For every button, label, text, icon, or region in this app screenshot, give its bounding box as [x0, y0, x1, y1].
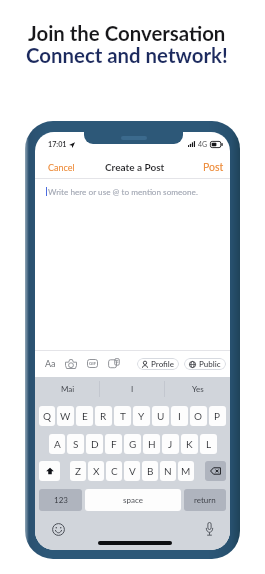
button[interactable]: L	[200, 434, 217, 454]
button[interactable]: Mai	[35, 379, 100, 399]
button[interactable]: C	[106, 461, 122, 481]
button[interactable]: P	[209, 406, 226, 426]
staticText: space	[123, 495, 143, 505]
button[interactable]: O	[190, 406, 207, 426]
staticText: P	[214, 410, 221, 422]
button[interactable]: J	[162, 434, 179, 454]
staticText: Connect and network!	[26, 43, 228, 67]
staticText: I	[131, 384, 134, 394]
button[interactable]: K	[181, 434, 198, 454]
staticText: Y	[138, 410, 145, 422]
button[interactable]: F	[105, 434, 122, 454]
button[interactable]: Attach file	[108, 358, 120, 369]
button[interactable]: Backspace	[205, 461, 226, 481]
button[interactable]: T	[114, 406, 131, 426]
button[interactable]: Z	[70, 461, 86, 481]
staticText: X	[93, 465, 100, 477]
button[interactable]: W	[57, 406, 74, 426]
staticText: 17:01	[48, 140, 67, 149]
staticText: I	[178, 410, 181, 422]
button[interactable]: I	[100, 379, 165, 399]
button[interactable]: Profile	[137, 358, 179, 370]
button[interactable]: G	[124, 434, 141, 454]
staticText: E	[82, 410, 88, 422]
button[interactable]: return	[184, 489, 226, 511]
button[interactable]: Voice input	[205, 522, 214, 536]
button[interactable]: H	[143, 434, 160, 454]
staticText: T	[120, 410, 126, 422]
button[interactable]: Shift	[39, 461, 60, 481]
staticText: S	[73, 438, 79, 450]
staticText: L	[206, 438, 212, 450]
staticText: O	[194, 410, 203, 422]
staticText: V	[129, 465, 136, 477]
staticText: Cancel	[48, 162, 75, 173]
staticText: M	[181, 465, 191, 477]
staticText: D	[91, 438, 99, 450]
button[interactable]: M	[178, 461, 194, 481]
staticText: Join the Conversation	[28, 21, 226, 45]
button[interactable]: Emoji	[52, 523, 65, 536]
staticText: W	[60, 410, 71, 422]
staticText: Yes	[192, 384, 204, 394]
staticText: Public	[199, 359, 221, 369]
staticText: H	[148, 438, 156, 450]
staticText: Z	[75, 465, 82, 477]
button[interactable]: N	[160, 461, 176, 481]
button[interactable]: Yes	[165, 379, 230, 399]
button[interactable]: Add photo	[65, 359, 77, 369]
staticText: Aa	[45, 358, 56, 369]
button[interactable]: V	[124, 461, 140, 481]
staticText: Mai	[61, 384, 75, 394]
button[interactable]: Y	[133, 406, 150, 426]
button[interactable]: I	[171, 406, 188, 426]
staticText: R	[100, 410, 107, 422]
staticText: Profile	[151, 359, 174, 369]
staticText: Write here or use @ to mention someone.	[48, 187, 198, 197]
button[interactable]: Post	[203, 161, 224, 174]
staticText: 123	[54, 495, 68, 505]
button[interactable]: Q	[39, 406, 55, 426]
button[interactable]: B	[142, 461, 158, 481]
staticText: B	[147, 465, 154, 477]
button[interactable]: Cancel	[48, 162, 75, 173]
staticText: G	[129, 438, 137, 450]
button[interactable]: A	[49, 434, 65, 454]
staticText: Q	[43, 410, 52, 422]
button[interactable]: Add GIF	[87, 359, 98, 368]
staticText: A	[54, 438, 61, 450]
button[interactable]: 123	[39, 489, 82, 511]
staticText: U	[157, 410, 165, 422]
button[interactable]: E	[76, 406, 93, 426]
button[interactable]: Aa	[45, 358, 56, 369]
staticText: Post	[203, 161, 224, 174]
staticText: 4G	[198, 140, 208, 148]
staticText: K	[186, 438, 193, 450]
staticText: F	[111, 438, 117, 450]
staticText: N	[164, 465, 172, 477]
button[interactable]: X	[88, 461, 104, 481]
button[interactable]: R	[95, 406, 112, 426]
button[interactable]: U	[152, 406, 169, 426]
button[interactable]: space	[85, 489, 181, 511]
staticText: GIF	[89, 361, 96, 366]
staticText: Create a Post	[105, 161, 165, 173]
staticText: return	[194, 495, 216, 505]
staticText: C	[111, 465, 118, 477]
button[interactable]: D	[86, 434, 103, 454]
staticText: J	[168, 438, 173, 450]
button[interactable]: S	[67, 434, 84, 454]
button[interactable]: Public	[184, 358, 226, 370]
